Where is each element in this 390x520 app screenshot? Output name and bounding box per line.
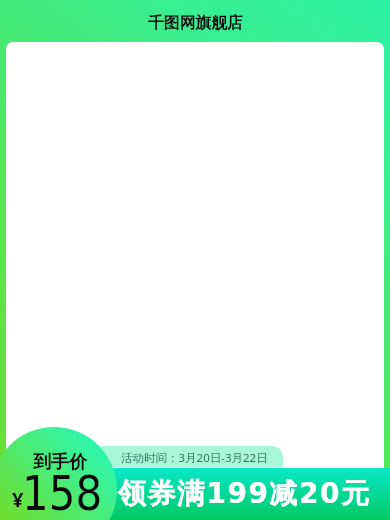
button[interactable]: 活动时间：3月20日-3月22日 xyxy=(90,446,283,467)
staticText: 千图网旗舰店 xyxy=(148,13,243,33)
staticText: 活动时间：3月20日-3月22日 xyxy=(121,450,268,466)
staticText: 158 xyxy=(22,465,102,520)
button[interactable]: 千图网旗舰店 xyxy=(0,0,390,42)
staticText: 到手价 xyxy=(33,451,87,474)
staticText: ¥ xyxy=(12,486,24,513)
staticText: 领券满199减20元 xyxy=(118,476,371,511)
button[interactable]: 领券满199减20元 xyxy=(0,468,390,520)
button[interactable]: 到手价 xyxy=(0,427,117,520)
